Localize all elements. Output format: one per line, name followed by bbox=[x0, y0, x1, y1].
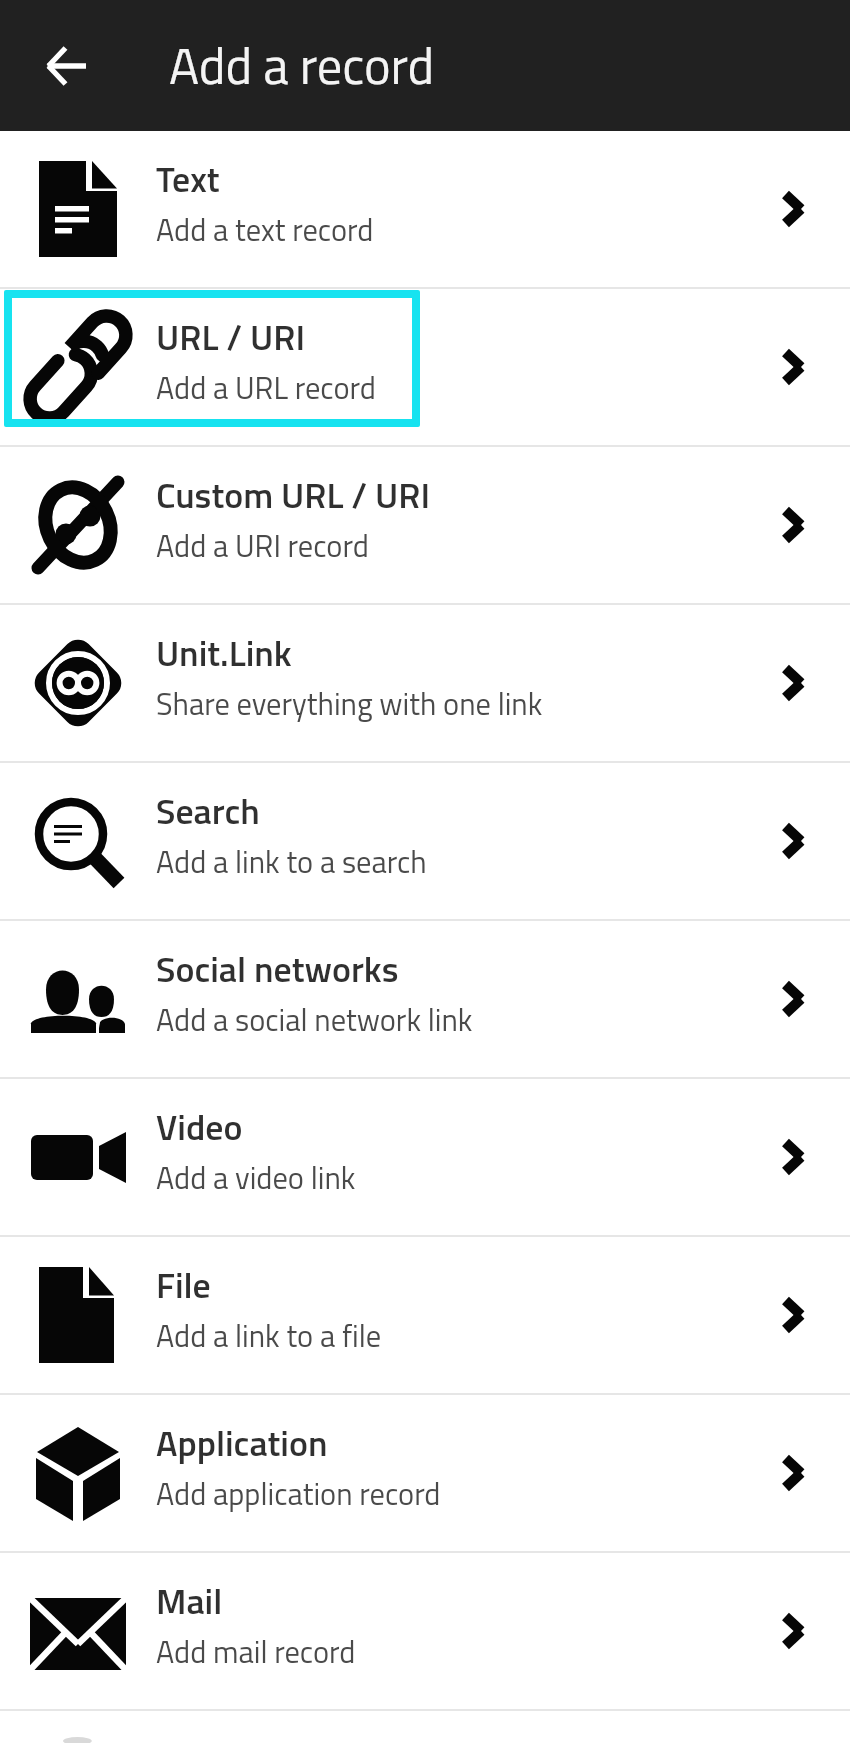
staticText: Custom URL / URI bbox=[156, 467, 431, 521]
button[interactable]: Search bbox=[0, 763, 850, 919]
staticText: Add a URL record bbox=[156, 364, 376, 410]
staticText: Add a link to a file bbox=[156, 1312, 382, 1358]
button[interactable]: Mail bbox=[0, 1553, 850, 1709]
button[interactable]: Open bbox=[775, 661, 811, 705]
staticText: Add a link to a search bbox=[156, 838, 427, 884]
button[interactable]: Text bbox=[0, 131, 850, 287]
button[interactable]: Open bbox=[775, 345, 811, 389]
staticText: Share everything with one link bbox=[156, 680, 543, 726]
staticText: Application bbox=[156, 1415, 328, 1469]
button[interactable]: Open bbox=[775, 503, 811, 547]
button[interactable]: Navigate up bbox=[26, 26, 106, 106]
button[interactable]: Social networks bbox=[0, 921, 850, 1077]
button[interactable]: Custom URL / URI bbox=[0, 447, 850, 603]
staticText: Add a social network link bbox=[156, 996, 473, 1042]
staticText: Add a video link bbox=[156, 1154, 356, 1200]
button[interactable]: Open bbox=[775, 1293, 811, 1337]
button[interactable]: Open bbox=[775, 187, 811, 231]
button[interactable]: Open bbox=[775, 1451, 811, 1495]
button[interactable]: Open bbox=[775, 1609, 811, 1653]
button[interactable]: Application bbox=[0, 1395, 850, 1551]
button[interactable]: Video bbox=[0, 1079, 850, 1235]
button[interactable]: URL / URI bbox=[0, 289, 850, 445]
button[interactable]: File bbox=[0, 1237, 850, 1393]
staticText: File bbox=[156, 1257, 211, 1311]
button[interactable]: Unit.Link bbox=[0, 605, 850, 761]
staticText: Add a URI record bbox=[156, 522, 369, 568]
staticText: Social networks bbox=[156, 941, 399, 995]
button[interactable]: Open bbox=[775, 977, 811, 1021]
staticText: Add a record bbox=[169, 27, 435, 104]
button[interactable]: Open bbox=[775, 819, 811, 863]
staticText: Search bbox=[156, 783, 260, 837]
staticText: Unit.Link bbox=[156, 625, 292, 679]
staticText: Mail bbox=[156, 1573, 223, 1627]
staticText: Add application record bbox=[156, 1470, 441, 1516]
staticText: Add a text record bbox=[156, 206, 374, 252]
button[interactable]: Open bbox=[775, 1135, 811, 1179]
staticText: Text bbox=[156, 151, 220, 205]
staticText: Video bbox=[156, 1099, 243, 1153]
staticText: Add mail record bbox=[156, 1628, 356, 1674]
staticText: URL / URI bbox=[156, 309, 306, 363]
